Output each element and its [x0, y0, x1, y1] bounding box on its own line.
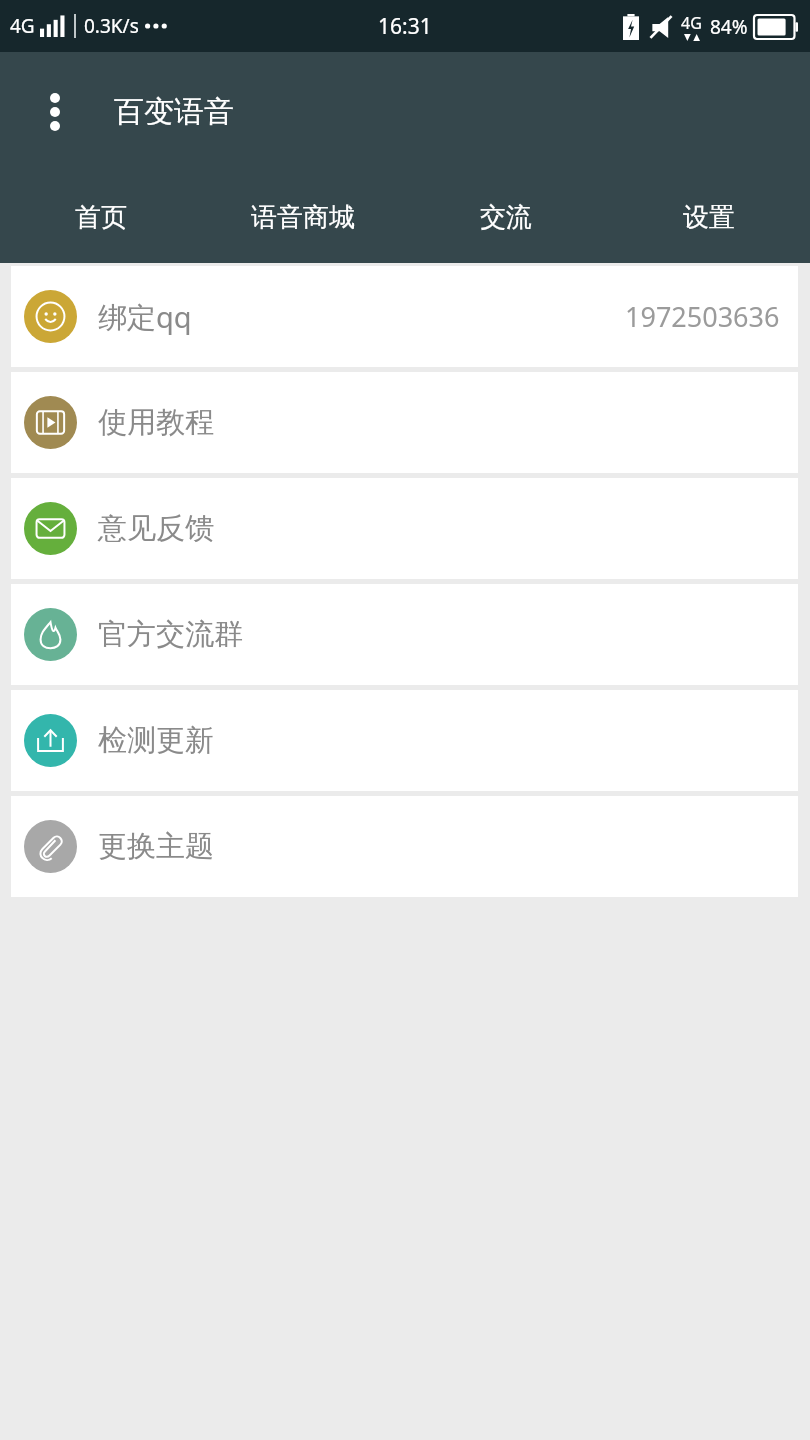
button[interactable]: 语音商城: [202, 172, 404, 263]
button[interactable]: More options: [22, 79, 88, 145]
button[interactable]: 绑定qq: [11, 266, 798, 367]
staticText: 0.3K/s: [84, 13, 139, 39]
button[interactable]: 使用教程: [11, 372, 798, 473]
button[interactable]: 意见反馈: [11, 478, 798, 579]
staticText: 4G: [681, 12, 702, 34]
staticText: 1972503636: [625, 298, 780, 335]
button[interactable]: 检测更新: [11, 690, 798, 791]
staticText: 使用教程: [98, 404, 214, 441]
button[interactable]: 更换主题: [11, 796, 798, 897]
staticText: 更换主题: [98, 828, 214, 865]
staticText: 交流: [480, 201, 532, 234]
staticText: 16:31: [378, 12, 432, 41]
staticText: 84%: [710, 14, 748, 40]
staticText: 官方交流群: [98, 616, 243, 653]
staticText: 百变语音: [114, 93, 234, 131]
staticText: 首页: [75, 201, 127, 234]
button[interactable]: 首页: [0, 172, 202, 263]
staticText: 4G: [10, 13, 35, 39]
button[interactable]: 设置: [607, 172, 810, 263]
staticText: 意见反馈: [98, 510, 214, 547]
button[interactable]: 官方交流群: [11, 584, 798, 685]
button[interactable]: 交流: [404, 172, 607, 263]
staticText: 设置: [683, 201, 735, 234]
staticText: 语音商城: [251, 201, 355, 234]
staticText: 检测更新: [98, 722, 214, 759]
staticText: 绑定qq: [98, 297, 192, 337]
